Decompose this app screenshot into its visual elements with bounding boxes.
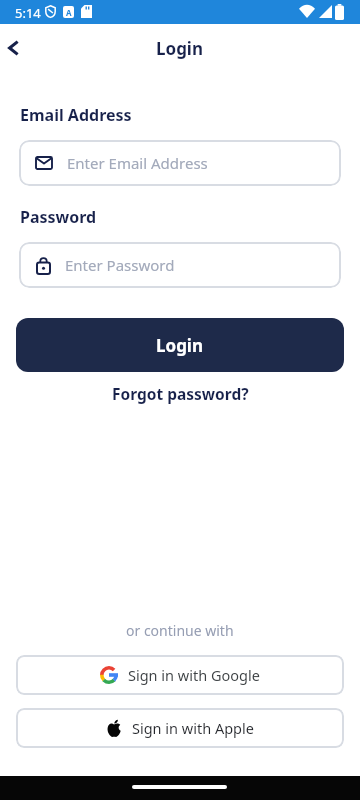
staticText: Login: [156, 37, 204, 60]
staticText: A: [66, 7, 72, 18]
button[interactable]: Forgot password?: [112, 383, 249, 404]
staticText: 5:14: [15, 4, 41, 22]
staticText: Sign in with Apple: [132, 718, 254, 738]
button[interactable]: Sign in with Google: [16, 655, 344, 695]
staticText: or continue with: [126, 621, 234, 640]
button[interactable]: Enter Password: [19, 242, 341, 288]
staticText: Sign in with Google: [128, 665, 260, 685]
button[interactable]: Sign in with Apple: [16, 708, 344, 748]
staticText: Login: [156, 334, 204, 357]
staticText: Email Address: [20, 104, 132, 126]
button[interactable]: Login: [16, 318, 344, 372]
staticText: Enter Password: [65, 255, 175, 275]
staticText: Password: [20, 206, 97, 228]
staticText: Enter Email Address: [67, 153, 208, 173]
button[interactable]: [0, 30, 30, 66]
button[interactable]: Enter Email Address: [19, 140, 341, 186]
